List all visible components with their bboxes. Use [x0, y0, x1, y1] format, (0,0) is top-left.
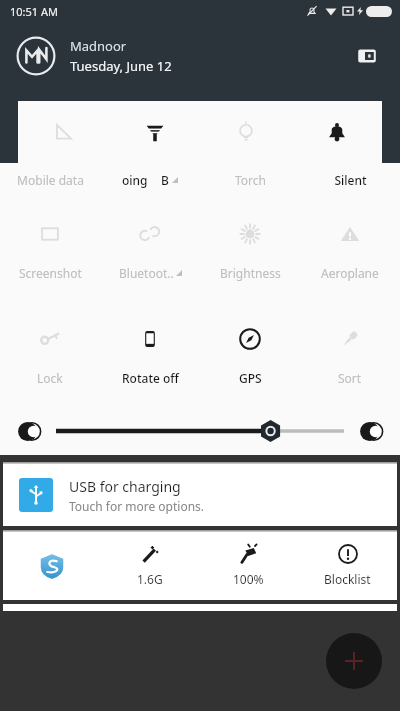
staticText: Bluetoot..	[119, 265, 174, 281]
staticText: Torch	[235, 172, 266, 188]
button[interactable]: Aeroplane	[300, 197, 400, 302]
staticText: Touch for more options.	[69, 498, 205, 514]
staticText: oing	[122, 172, 148, 188]
staticText: Screenshot	[19, 265, 82, 281]
button[interactable]: Rotate off	[100, 302, 200, 407]
staticText: Lock	[37, 370, 63, 386]
staticText: Aeroplane	[321, 265, 379, 281]
button[interactable]: Quick setting	[291, 101, 382, 163]
staticText: 10:51 AM	[10, 4, 58, 19]
button[interactable]: Quick setting	[109, 101, 200, 163]
staticText: Brightness	[220, 265, 281, 281]
button[interactable]: Brightness	[200, 197, 300, 302]
button[interactable]: Security	[3, 532, 101, 600]
button[interactable]: Brightness slider	[56, 416, 344, 446]
button[interactable]: Lock	[0, 302, 100, 407]
button[interactable]: Blocklist	[298, 532, 397, 600]
button[interactable]: Add	[326, 633, 382, 689]
staticText: Sort	[338, 370, 362, 386]
button[interactable]: 1.6G	[101, 532, 199, 600]
button[interactable]: Sort	[300, 302, 400, 407]
staticText: USB for charging	[69, 477, 181, 496]
staticText: Silent	[334, 172, 367, 188]
button[interactable]: Settings	[350, 39, 384, 73]
staticText: 100%	[233, 571, 264, 587]
staticText: Madnoor	[70, 37, 127, 55]
staticText: Mobile data	[17, 172, 84, 188]
button[interactable]: Brightness mode	[356, 416, 386, 446]
staticText: Blocklist	[324, 571, 371, 587]
button[interactable]: Quick setting	[18, 101, 109, 163]
staticText: Tuesday, June 12	[70, 57, 172, 75]
button[interactable]: Auto brightness	[14, 416, 44, 446]
staticText: GPS	[239, 370, 262, 386]
button[interactable]: 100%	[199, 532, 298, 600]
staticText: B	[161, 172, 169, 188]
staticText: 1.6G	[137, 571, 163, 587]
staticText: Rotate off	[122, 370, 179, 386]
button[interactable]: USB for charging	[3, 464, 397, 526]
button[interactable]: Screenshot	[0, 197, 100, 302]
button[interactable]: GPS	[200, 302, 300, 407]
button[interactable]: Bluetoot..	[100, 197, 200, 302]
